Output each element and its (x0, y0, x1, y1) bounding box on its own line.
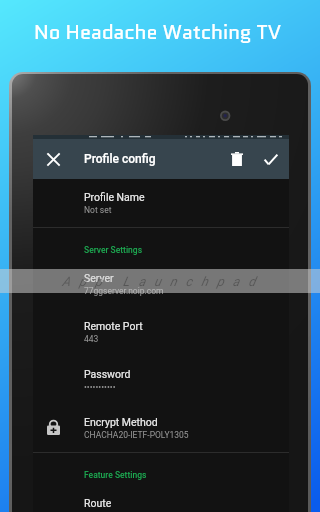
button[interactable]: Server (33, 260, 289, 308)
button[interactable]: Save (255, 139, 287, 179)
staticText: 443 (84, 334, 99, 344)
staticText: Profile Name (84, 191, 145, 203)
button[interactable]: Encrypt Method (33, 404, 289, 452)
staticText: Encrypt Method (84, 416, 158, 428)
button[interactable]: Close (37, 139, 69, 179)
button[interactable]: Profile Name (33, 179, 289, 227)
button[interactable]: Remote Port (33, 308, 289, 356)
staticText: Server (84, 272, 114, 284)
staticText: CHACHA20-IETF-POLY1305 (84, 430, 189, 440)
button[interactable]: Password (33, 356, 289, 404)
staticText: 77ggserver.noip.com (84, 286, 164, 296)
staticText: Password (84, 368, 131, 380)
button[interactable]: Route (33, 485, 289, 512)
staticText: Remote Port (84, 320, 143, 332)
staticText: No Headache Watching TV (34, 18, 281, 47)
staticText: App Launchpad (62, 274, 265, 289)
staticText: Feature Settings (84, 470, 147, 480)
staticText: ••••••••••• (84, 382, 116, 392)
staticText: Server Settings (84, 245, 143, 255)
staticText: Not set (84, 205, 112, 215)
staticText: Route (84, 497, 112, 509)
staticText: Profile config (84, 152, 156, 166)
button[interactable]: Delete (221, 139, 253, 179)
